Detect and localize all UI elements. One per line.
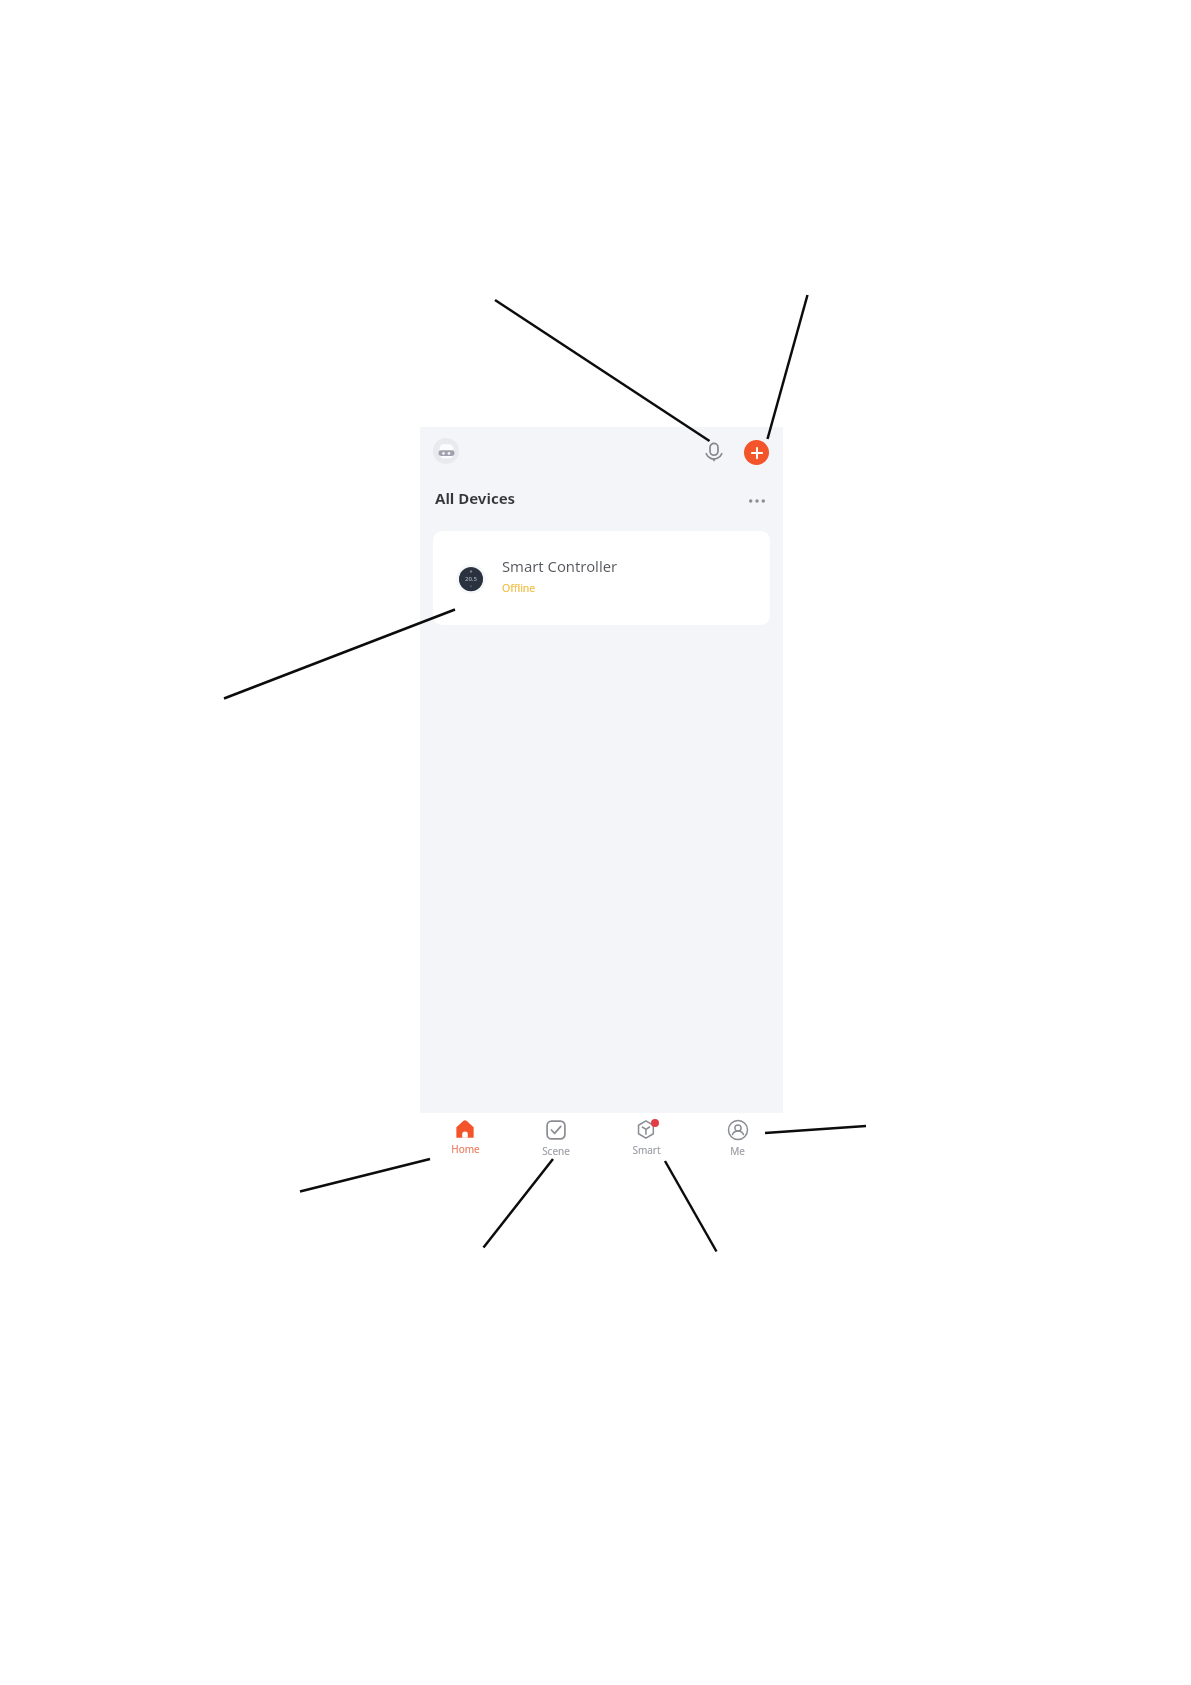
staticText: Offline bbox=[502, 581, 536, 595]
staticText: Smart Controller bbox=[502, 556, 618, 576]
staticText: Me bbox=[730, 1144, 745, 1158]
button[interactable]: Me bbox=[692, 1113, 783, 1161]
staticText: All Devices bbox=[435, 488, 516, 508]
button[interactable]: Add device bbox=[744, 440, 769, 465]
button[interactable]: Home selector bbox=[433, 438, 459, 464]
button[interactable]: Scene bbox=[510, 1113, 601, 1161]
button[interactable]: More options bbox=[745, 489, 769, 513]
staticText: Home bbox=[451, 1142, 480, 1156]
staticText: Smart bbox=[632, 1143, 661, 1157]
staticText: Scene bbox=[542, 1144, 570, 1158]
button[interactable]: Smart bbox=[601, 1113, 692, 1161]
button[interactable]: 20.5 bbox=[433, 531, 770, 625]
button[interactable]: Voice assistant bbox=[703, 441, 725, 463]
button[interactable]: Home bbox=[420, 1113, 510, 1161]
staticText: 20.5 bbox=[465, 575, 477, 583]
